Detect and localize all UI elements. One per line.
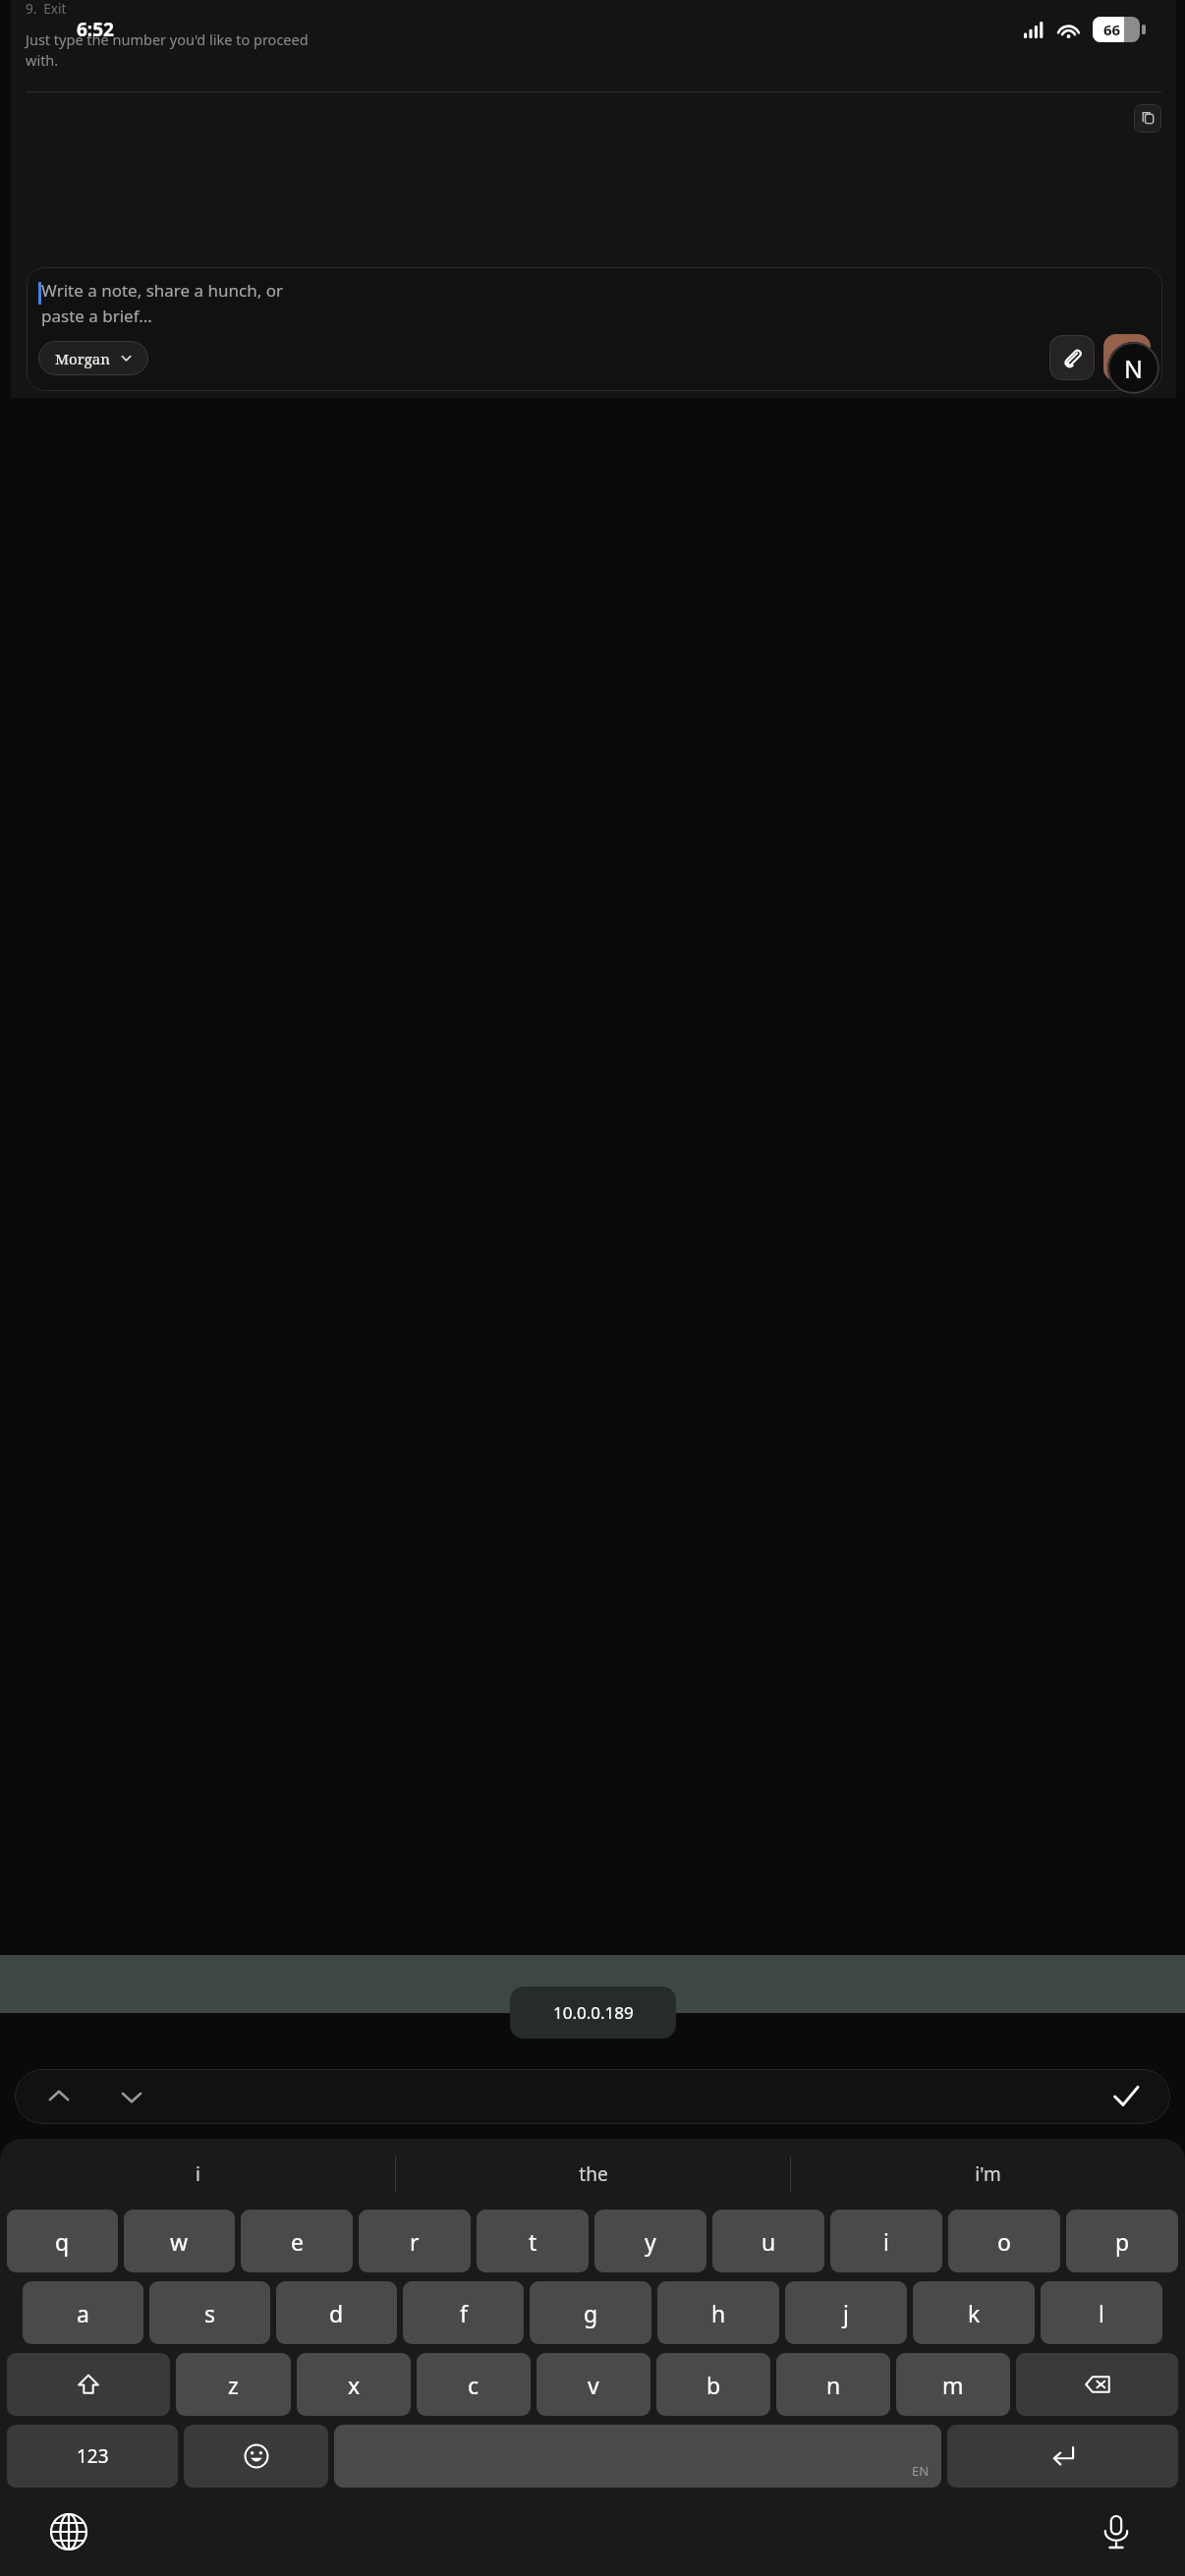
staticText: o <box>997 2226 1011 2257</box>
staticText: e <box>291 2226 304 2257</box>
staticText: 6:52 <box>77 17 114 42</box>
button[interactable]: p <box>1066 2210 1178 2272</box>
staticText: i <box>883 2226 889 2257</box>
staticText: w <box>170 2226 189 2257</box>
button[interactable]: v <box>536 2353 650 2416</box>
staticText: 123 <box>77 2443 109 2469</box>
staticText: 9. Exit <box>26 0 67 18</box>
button[interactable]: Morgan <box>38 341 148 375</box>
staticText: b <box>706 2370 721 2400</box>
button[interactable]: Copy <box>1134 104 1161 133</box>
button[interactable]: Emoji <box>184 2425 328 2488</box>
button[interactable]: d <box>276 2281 397 2344</box>
button[interactable]: c <box>417 2353 531 2416</box>
button[interactable]: k <box>913 2281 1035 2344</box>
staticText: z <box>228 2370 239 2400</box>
button[interactable]: s <box>149 2281 270 2344</box>
button[interactable]: a <box>23 2281 143 2344</box>
staticText: i <box>196 2161 200 2187</box>
button[interactable]: t <box>477 2210 589 2272</box>
staticText: h <box>711 2298 726 2328</box>
staticText: y <box>645 2226 656 2257</box>
button[interactable]: o <box>948 2210 1060 2272</box>
button[interactable]: Shift <box>7 2353 170 2416</box>
staticText: x <box>348 2370 361 2400</box>
staticText: 10.0.0.189 <box>553 2001 634 2024</box>
staticText: d <box>329 2298 344 2328</box>
button[interactable]: f <box>403 2281 524 2344</box>
button[interactable]: g <box>530 2281 651 2344</box>
staticText: u <box>762 2226 776 2257</box>
staticText: m <box>942 2370 964 2400</box>
button[interactable]: Attach file <box>1049 335 1095 380</box>
staticText: t <box>529 2226 537 2257</box>
button[interactable]: r <box>359 2210 471 2272</box>
button[interactable]: the <box>396 2139 790 2210</box>
staticText: q <box>55 2226 70 2257</box>
staticText: Just type the number you'd like to proce… <box>26 29 309 71</box>
button[interactable]: z <box>176 2353 291 2416</box>
button[interactable]: Voice input <box>1087 2502 1146 2561</box>
button[interactable]: Backspace <box>1016 2353 1178 2416</box>
button[interactable]: m <box>896 2353 1010 2416</box>
staticText: EN <box>912 2462 930 2480</box>
staticText: l <box>1099 2298 1104 2328</box>
button[interactable]: 10.0.0.189 <box>510 1987 676 2039</box>
staticText: Write a note, share a hunch, or paste a … <box>41 279 283 327</box>
button[interactable]: 123 <box>7 2425 178 2488</box>
button[interactable]: y <box>594 2210 706 2272</box>
button[interactable]: n <box>776 2353 890 2416</box>
staticText: j <box>843 2298 849 2328</box>
button[interactable]: u <box>712 2210 824 2272</box>
staticText: p <box>1115 2226 1130 2257</box>
button[interactable]: i'm <box>791 2139 1185 2210</box>
button[interactable]: Next field <box>109 2074 154 2119</box>
staticText: k <box>968 2298 981 2328</box>
button[interactable]: j <box>785 2281 907 2344</box>
staticText: N <box>1124 352 1144 385</box>
button[interactable]: i <box>0 2139 395 2210</box>
staticText: c <box>468 2370 480 2400</box>
staticText: 66 <box>1103 20 1121 39</box>
button[interactable]: x <box>297 2353 411 2416</box>
staticText: r <box>410 2226 420 2257</box>
staticText: n <box>826 2370 841 2400</box>
button[interactable]: Enter <box>947 2425 1178 2488</box>
button[interactable]: Assistant <box>1107 342 1159 394</box>
staticText: Morgan <box>55 349 110 368</box>
button[interactable]: h <box>657 2281 779 2344</box>
button[interactable]: l <box>1041 2281 1162 2344</box>
staticText: the <box>579 2161 608 2187</box>
staticText: g <box>584 2298 598 2328</box>
button[interactable]: i <box>830 2210 942 2272</box>
staticText: s <box>204 2298 216 2328</box>
button[interactable]: b <box>656 2353 770 2416</box>
staticText: f <box>460 2298 468 2328</box>
button[interactable]: w <box>124 2210 235 2272</box>
staticText: i'm <box>975 2161 1001 2187</box>
button[interactable]: q <box>7 2210 118 2272</box>
button[interactable]: Done <box>1103 2074 1149 2119</box>
staticText: v <box>588 2370 599 2400</box>
button[interactable]: Previous field <box>36 2074 82 2119</box>
button[interactable]: Send <box>1103 334 1151 381</box>
button[interactable]: e <box>241 2210 353 2272</box>
staticText: a <box>77 2298 89 2328</box>
button[interactable]: Change language <box>39 2502 98 2561</box>
button[interactable]: Space <box>334 2425 941 2488</box>
